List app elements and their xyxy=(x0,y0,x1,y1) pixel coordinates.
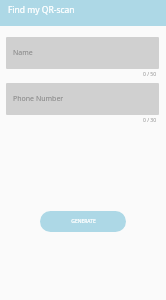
staticText: Phone Number xyxy=(13,94,64,104)
staticText: 0 / 30 xyxy=(143,117,157,124)
button[interactable]: Name xyxy=(6,37,159,69)
staticText: Find my QR-scan xyxy=(8,4,75,16)
button[interactable]: Phone Number xyxy=(6,83,159,115)
staticText: GENERATE xyxy=(71,218,96,225)
staticText: Name xyxy=(13,48,33,58)
staticText: 0 / 50 xyxy=(143,71,157,78)
button[interactable]: GENERATE xyxy=(40,211,126,232)
